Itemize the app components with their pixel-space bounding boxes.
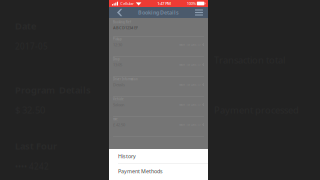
- staticText: Pickup: [113, 37, 122, 41]
- staticText: Booking Ref: [113, 20, 131, 24]
- staticText: Details: [113, 82, 125, 87]
- staticText: Mon 18 Dec 17: [179, 43, 201, 46]
- staticText: 1:47 PM: [157, 1, 171, 6]
- staticText: 12:30: [113, 42, 122, 47]
- staticText: Fare: [113, 117, 118, 121]
- staticText: ABCD1234 EF: [113, 25, 138, 30]
- button[interactable]: Payment Methods: [109, 164, 208, 179]
- staticText: Mon 18 Dec 17: [179, 103, 201, 106]
- staticText: 100%: [187, 1, 196, 6]
- staticText: Saloon: [113, 102, 124, 107]
- staticText: History: [118, 153, 136, 160]
- staticText: 13:05: [113, 62, 122, 67]
- button[interactable]: History: [109, 149, 208, 164]
- staticText: Mon 18 Dec 17: [179, 63, 201, 66]
- staticText: Cellular: [119, 1, 134, 6]
- staticText: Drop: [113, 57, 120, 61]
- staticText: Payment Methods: [118, 168, 163, 175]
- staticText: £ 42.50: [113, 122, 125, 127]
- staticText: Vehicle: [113, 97, 124, 101]
- staticText: Driver Information: [113, 77, 138, 81]
- staticText: Mon 18 Dec 17: [179, 123, 201, 126]
- button[interactable]: Back: [109, 7, 133, 18]
- button[interactable]: Menu: [184, 7, 208, 18]
- staticText: Mon 18 Dec 17: [179, 83, 201, 86]
- staticText: Booking Details: [138, 9, 179, 16]
